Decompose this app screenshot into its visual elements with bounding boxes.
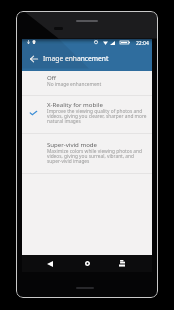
staticText: Off [47,73,56,81]
button[interactable]: Navigate up [27,52,40,65]
button[interactable]: Super-vivid mode [22,133,152,173]
staticText: No image enhancement [47,81,102,88]
staticText: Improve the viewing quality of photos an… [47,108,147,125]
button[interactable]: Navigate up [22,46,152,71]
button[interactable]: Recent apps [112,255,132,272]
staticText: Super-vivid mode [47,140,98,148]
button[interactable]: Off [22,70,152,95]
staticText: Image enhancement [43,54,109,63]
button[interactable]: Home [77,255,97,272]
button[interactable]: X-Reality for mobile [22,95,152,133]
staticText: Maximize colors while viewing photos and… [47,148,142,165]
staticText: 22:04 [136,40,149,47]
staticText: X-Reality for mobile [47,100,103,108]
button[interactable]: Back [40,255,60,272]
